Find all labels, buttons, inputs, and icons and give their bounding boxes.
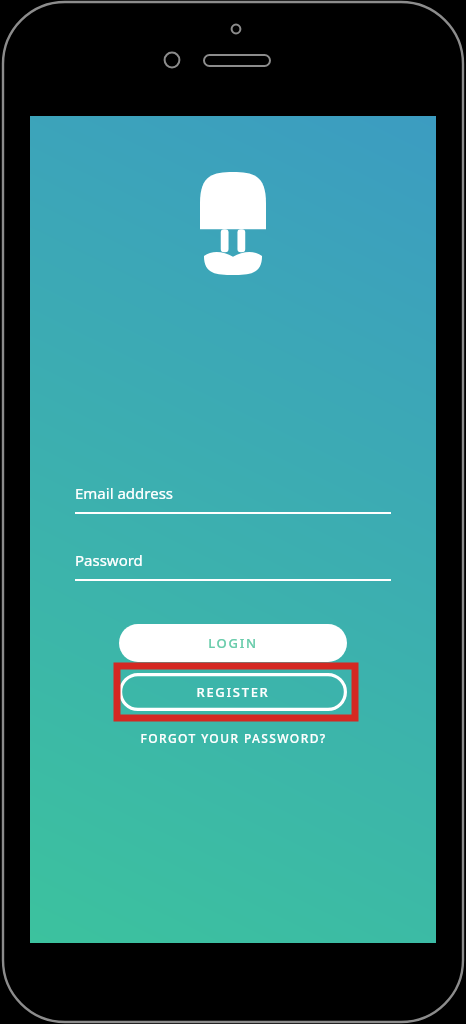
button[interactable]: LOGIN — [119, 624, 347, 662]
button[interactable]: Email address — [75, 483, 391, 515]
button[interactable]: REGISTER — [119, 673, 347, 711]
staticText: REGISTER — [196, 683, 270, 701]
staticText: Email address — [75, 483, 174, 503]
staticText: LOGIN — [208, 634, 258, 652]
staticText: FORGOT YOUR PASSWORD? — [140, 730, 327, 746]
button[interactable]: Password — [75, 550, 391, 582]
staticText: Password — [75, 550, 143, 570]
button[interactable]: FORGOT YOUR PASSWORD? — [110, 726, 356, 750]
